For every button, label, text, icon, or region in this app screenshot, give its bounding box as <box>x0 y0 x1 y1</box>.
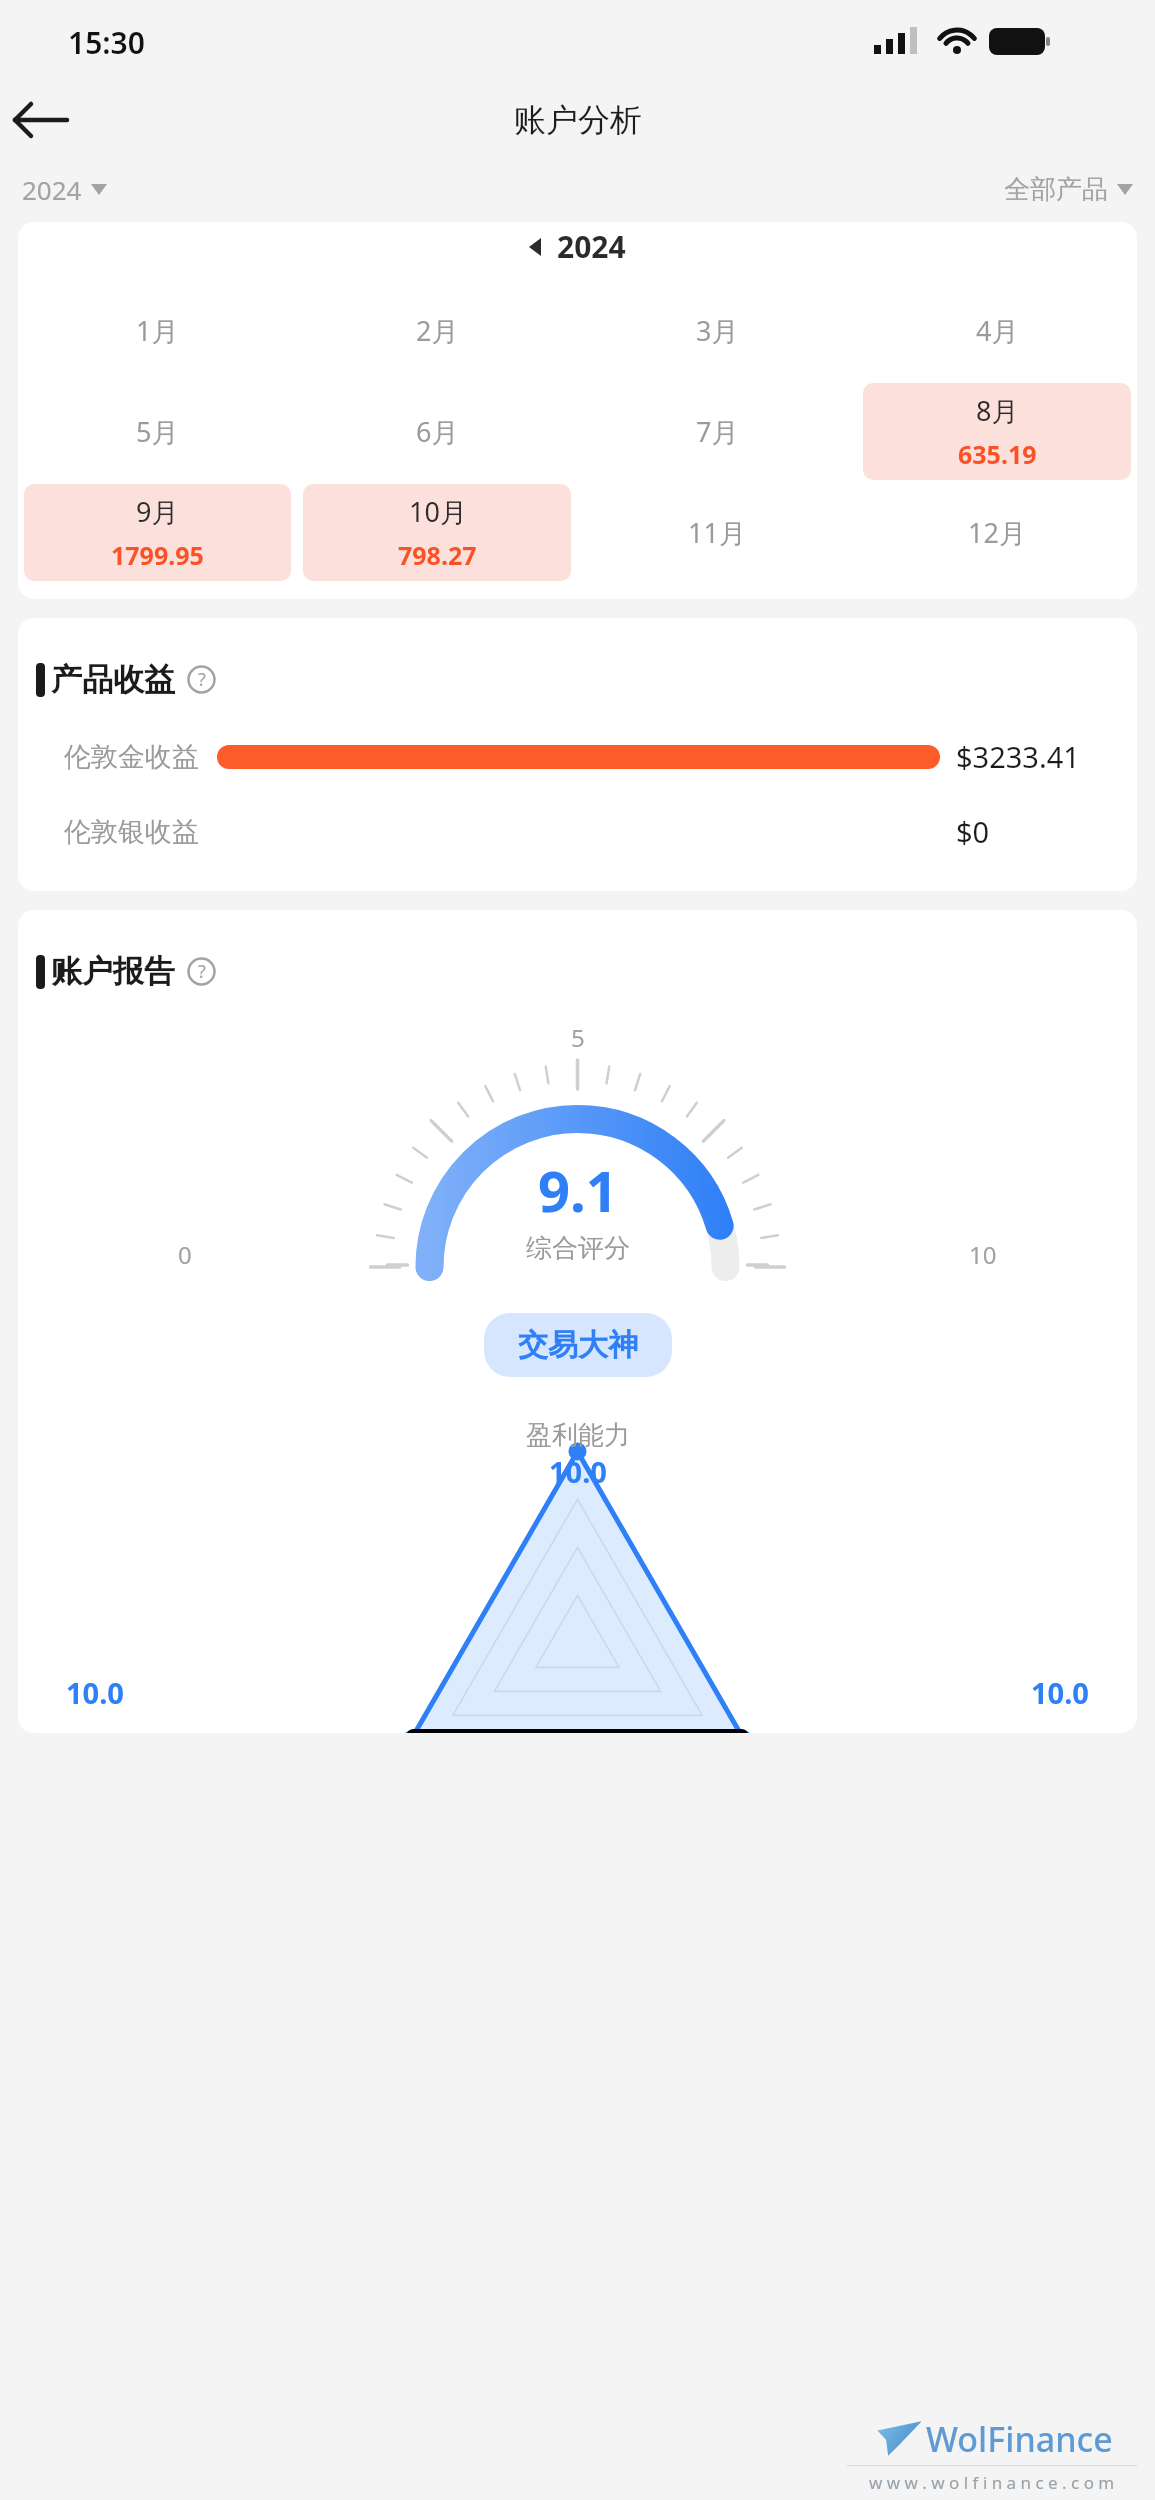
staticText: 2024 <box>557 226 626 267</box>
button[interactable]: 11月 <box>583 484 851 581</box>
button[interactable]: 3月 <box>583 282 851 379</box>
button[interactable]: 2024 <box>529 226 626 267</box>
staticText: $0 <box>956 812 990 851</box>
button[interactable]: Help <box>187 957 216 986</box>
staticText: 15:30 <box>68 22 145 63</box>
staticText: 交易大神 <box>518 1326 638 1364</box>
staticText: 2月 <box>416 312 459 349</box>
button[interactable]: 1月 <box>24 282 291 379</box>
staticText: 账户分析 <box>514 100 642 140</box>
staticText: 7月 <box>696 413 739 450</box>
staticText: 产品收益 <box>51 660 175 699</box>
staticText: 10.0 <box>549 1452 607 1491</box>
staticText: 综合评分 <box>526 1232 630 1265</box>
staticText: 11月 <box>688 514 746 551</box>
staticText: ? <box>198 667 206 692</box>
staticText: 798.27 <box>398 538 477 572</box>
staticText: 9.1 <box>538 1152 618 1228</box>
staticText: 1799.95 <box>111 538 204 572</box>
staticText: 9月 <box>136 493 179 530</box>
staticText: WolFinance <box>926 2416 1113 2462</box>
button[interactable]: Back <box>10 89 72 151</box>
button[interactable]: 9月 <box>24 484 291 581</box>
button[interactable]: 10月 <box>303 484 571 581</box>
staticText: ? <box>198 959 206 984</box>
button[interactable]: 交易大神 <box>484 1313 672 1377</box>
button[interactable]: 5月 <box>24 383 291 480</box>
staticText: w w w . w o l f i n a n c e . c o m <box>869 2471 1115 2494</box>
button[interactable]: 4月 <box>863 282 1131 379</box>
staticText: 6月 <box>416 413 459 450</box>
staticText: 8月 <box>976 392 1019 429</box>
button[interactable]: Help <box>187 665 216 694</box>
staticText: 0 <box>178 1238 192 1271</box>
button[interactable]: 12月 <box>863 484 1131 581</box>
staticText: 10.0 <box>66 1673 124 1712</box>
staticText: 10 <box>969 1238 997 1271</box>
button[interactable]: 6月 <box>303 383 571 480</box>
staticText: 伦敦银收益 <box>64 815 199 849</box>
button[interactable]: 全部产品 <box>1004 173 1133 206</box>
staticText: 10.0 <box>1031 1673 1089 1712</box>
button[interactable]: 2024 <box>22 172 107 207</box>
staticText: 账户报告 <box>51 952 175 991</box>
staticText: 1月 <box>136 312 179 349</box>
staticText: 4月 <box>976 312 1019 349</box>
staticText: 盈利能力 <box>526 1419 630 1452</box>
button[interactable]: 2月 <box>303 282 571 379</box>
staticText: 12月 <box>968 514 1026 551</box>
staticText: 3月 <box>696 312 739 349</box>
staticText: 5 <box>571 1021 585 1054</box>
staticText: 伦敦金收益 <box>64 740 199 774</box>
staticText: 2024 <box>22 172 82 207</box>
staticText: 635.19 <box>958 437 1037 471</box>
staticText: 全部产品 <box>1004 173 1108 206</box>
button[interactable]: 8月 <box>863 383 1131 480</box>
staticText: 10月 <box>409 493 467 530</box>
staticText: $3233.41 <box>956 737 1080 776</box>
button[interactable]: 7月 <box>583 383 851 480</box>
staticText: 5月 <box>136 413 179 450</box>
